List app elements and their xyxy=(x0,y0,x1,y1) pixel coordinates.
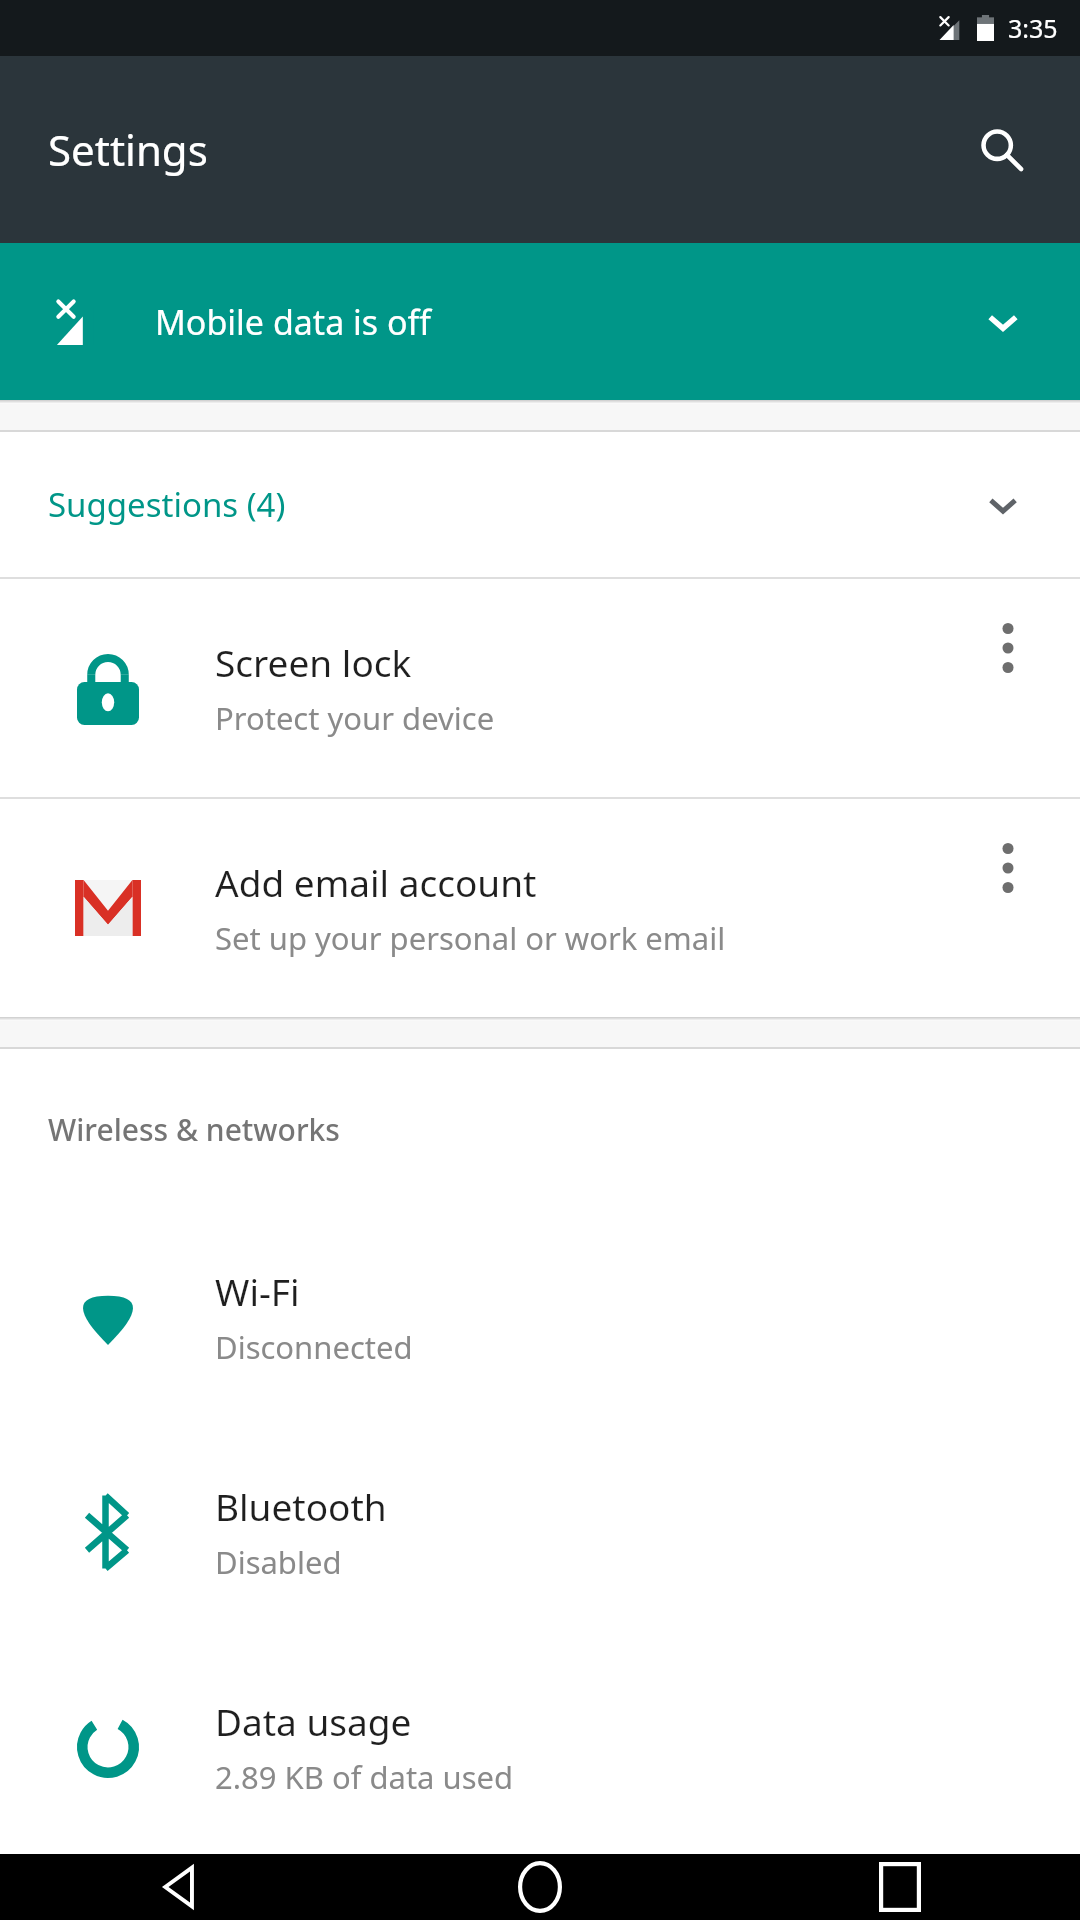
button[interactable]: Search xyxy=(954,102,1050,198)
staticText: Protect your device xyxy=(215,697,495,739)
staticText: Disconnected xyxy=(215,1326,413,1368)
staticText: Settings xyxy=(48,121,208,178)
button[interactable]: Bluetooth xyxy=(0,1424,1080,1639)
button[interactable]: Back xyxy=(0,1854,360,1920)
staticText: Add email account xyxy=(215,857,537,907)
staticText: 2.89 KB of data used xyxy=(215,1756,514,1798)
button[interactable]: More options xyxy=(966,826,1050,910)
staticText: Data usage xyxy=(215,1696,412,1746)
staticText: Suggestions (4) xyxy=(48,482,970,527)
button[interactable]: Wi-Fi xyxy=(0,1209,1080,1424)
button[interactable]: More options xyxy=(966,606,1050,690)
staticText: 3:35 xyxy=(1008,11,1058,45)
button[interactable]: Suggestions (4) xyxy=(0,432,1080,577)
staticText: Wireless & networks xyxy=(48,1109,340,1150)
staticText: Disabled xyxy=(215,1541,342,1583)
button[interactable]: Recent apps xyxy=(720,1854,1080,1920)
staticText: Mobile data is off xyxy=(155,299,968,345)
button[interactable]: Home xyxy=(360,1854,720,1920)
staticText: Bluetooth xyxy=(215,1481,387,1531)
staticText: Screen lock xyxy=(215,637,412,687)
button[interactable]: Screen lock xyxy=(0,579,1080,797)
button[interactable]: Mobile data is off xyxy=(0,243,1080,400)
button[interactable]: Add email account xyxy=(0,799,1080,1017)
button[interactable]: Data usage xyxy=(0,1639,1080,1854)
staticText: Wi-Fi xyxy=(215,1266,300,1316)
staticText: Set up your personal or work email xyxy=(215,917,726,959)
